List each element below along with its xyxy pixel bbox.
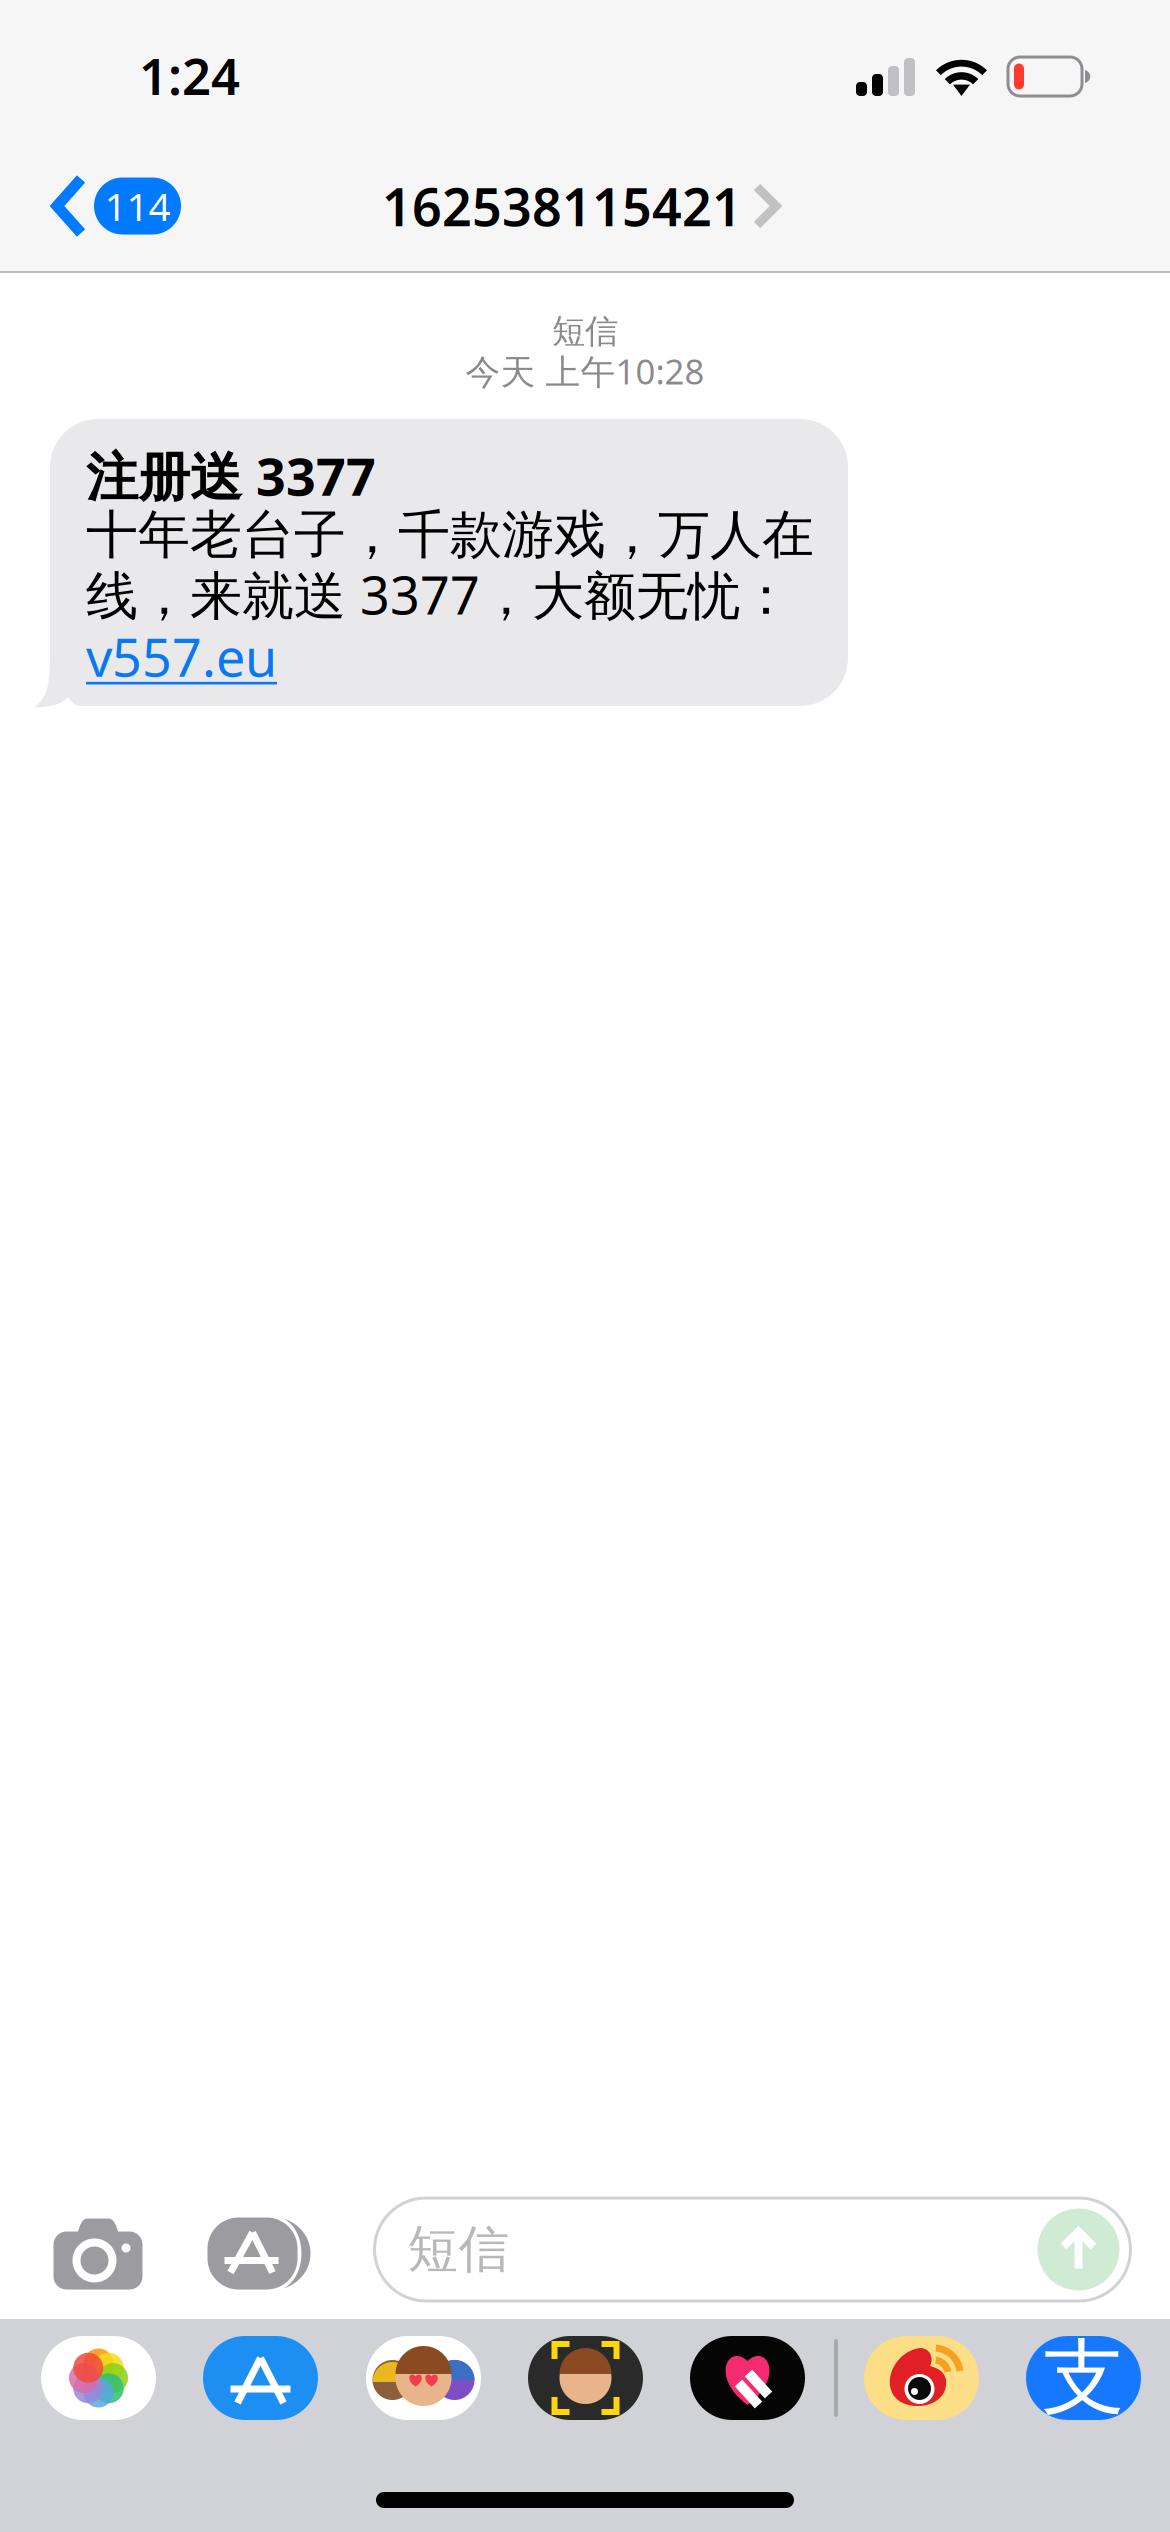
button[interactable]: Send: [1037, 2208, 1119, 2290]
button[interactable]: Photos: [41, 2336, 156, 2420]
staticText: 支: [1042, 2327, 1125, 2429]
staticText: 1:24: [139, 42, 240, 109]
staticText: 线，来就送 3377，大额无忧：: [86, 560, 792, 629]
staticText: 114: [104, 180, 170, 232]
staticText: 短信: [552, 311, 618, 352]
staticText: v557.eu: [86, 622, 277, 691]
button[interactable]: Health sharing: [690, 2336, 805, 2420]
staticText: 162538115421: [382, 171, 742, 241]
staticText: 今天 上午10:28: [465, 348, 704, 394]
button[interactable]: Alipay: [1026, 2336, 1141, 2420]
button[interactable]: Back to Messages, 114 unread: [0, 159, 205, 253]
staticText: 注册送 3377: [86, 441, 376, 510]
button[interactable]: Memoji Stickers: [366, 2336, 481, 2420]
button[interactable]: iMessage apps: [207, 2217, 315, 2289]
button[interactable]: Memoji: [528, 2336, 643, 2420]
button[interactable]: App Store: [203, 2336, 318, 2420]
staticText: 短信: [407, 2218, 509, 2281]
staticText: 十年老台子，千款游戏，万人在: [86, 503, 814, 567]
button[interactable]: Take photo or video: [53, 2217, 142, 2289]
button[interactable]: Weibo: [864, 2336, 979, 2420]
